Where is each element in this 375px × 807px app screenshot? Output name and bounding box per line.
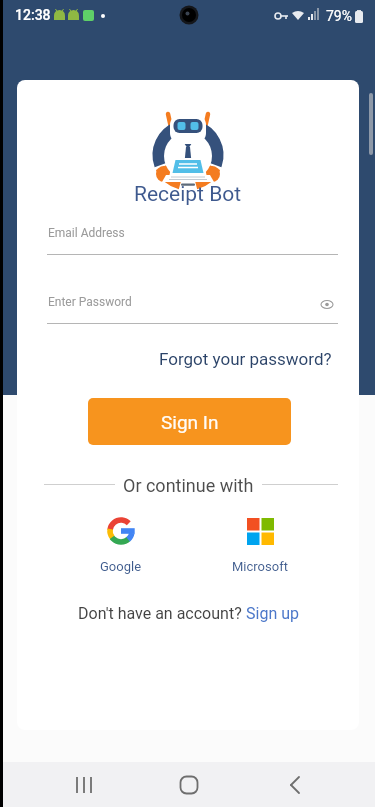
button[interactable]: Sign up (246, 604, 299, 623)
button[interactable]: Forgot your password? (159, 349, 332, 369)
button[interactable] (320, 299, 334, 310)
staticText: Don't have an account? (78, 604, 246, 623)
button[interactable]: Google (87, 510, 155, 580)
button[interactable] (173, 769, 205, 801)
button[interactable]: Email Address (47, 220, 338, 260)
staticText: 12:38 (15, 7, 51, 23)
staticText: Google (100, 559, 142, 574)
staticText: Microsoft (232, 559, 288, 574)
staticText: Receipt Bot (134, 182, 242, 207)
staticText: Email Address (48, 226, 125, 240)
button[interactable]: Microsoft (226, 510, 294, 580)
staticText: Enter Password (48, 295, 132, 309)
staticText: Or continue with (123, 475, 254, 495)
staticText: Forgot your password? (159, 349, 332, 369)
button[interactable] (69, 769, 101, 801)
staticText: Sign In (161, 411, 219, 433)
staticText: Sign up (246, 604, 299, 623)
staticText: 79% (326, 8, 352, 24)
button[interactable] (279, 769, 311, 801)
button[interactable]: Sign In (88, 398, 291, 445)
button[interactable]: Enter Password (47, 289, 338, 329)
